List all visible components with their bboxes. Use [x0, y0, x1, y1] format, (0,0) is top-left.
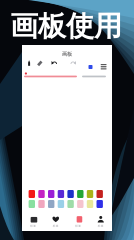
button[interactable]: Favourites	[44, 210, 67, 233]
button[interactable]: Canvas	[67, 210, 89, 233]
staticText: 画板使用	[10, 9, 122, 43]
button[interactable]: Colour swatch	[67, 190, 74, 198]
button[interactable]: Colour swatch	[48, 190, 54, 198]
button[interactable]: Colour swatch	[29, 200, 35, 208]
button[interactable]: Colour swatch	[77, 200, 83, 208]
button[interactable]: Gallery	[22, 210, 44, 233]
button[interactable]: Colour swatch	[58, 200, 64, 208]
button[interactable]: Profile	[89, 210, 112, 233]
button[interactable]: Colour	[81, 58, 92, 69]
button[interactable]: Colour swatch	[77, 190, 83, 198]
button[interactable]: Colour swatch	[96, 190, 103, 198]
button[interactable]: Menu	[95, 58, 106, 69]
staticText: 标签	[75, 224, 81, 227]
button[interactable]: Colour swatch	[29, 190, 35, 198]
staticText: 标签	[98, 224, 104, 227]
staticText: 画板	[62, 51, 72, 57]
staticText: 标签	[30, 224, 36, 227]
button[interactable]: Redo	[67, 58, 78, 69]
button[interactable]: Eraser	[34, 58, 45, 69]
button[interactable]: Colour swatch	[87, 200, 93, 208]
staticText: 标签	[53, 224, 59, 227]
button[interactable]: Colour swatch	[48, 200, 54, 208]
button[interactable]: Colour swatch	[87, 190, 93, 198]
button[interactable]: Undo	[49, 58, 60, 69]
button[interactable]: Colour swatch	[67, 200, 74, 208]
button[interactable]: Colour swatch	[96, 200, 103, 208]
button[interactable]: Colour swatch	[58, 190, 64, 198]
button[interactable]: Pen	[24, 58, 35, 69]
button[interactable]: Colour swatch	[38, 190, 45, 198]
button[interactable]: Colour swatch	[38, 200, 45, 208]
